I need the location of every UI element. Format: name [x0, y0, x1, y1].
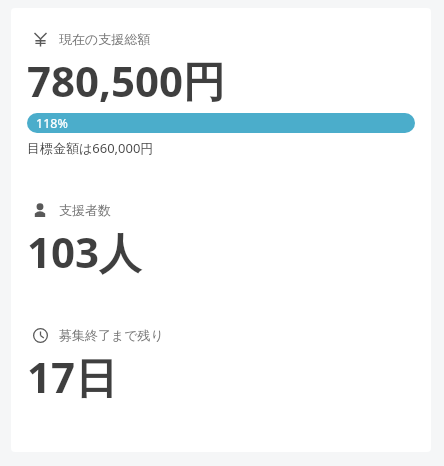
- staticText: 目標金額は660,000円: [27, 139, 154, 157]
- staticText: 780,500円: [27, 52, 226, 109]
- other: Days remaining: [33, 328, 48, 343]
- staticText: 募集終了まで残り: [59, 327, 164, 343]
- other: Supporters: [33, 203, 47, 217]
- staticText: 現在の支援総額: [59, 31, 151, 47]
- button[interactable]: Total amount: [11, 8, 431, 452]
- other: Total amount: [33, 32, 48, 47]
- staticText: 103人: [27, 223, 142, 280]
- staticText: 支援者数: [59, 202, 111, 218]
- staticText: 118%: [36, 115, 68, 132]
- staticText: 17日: [27, 348, 118, 405]
